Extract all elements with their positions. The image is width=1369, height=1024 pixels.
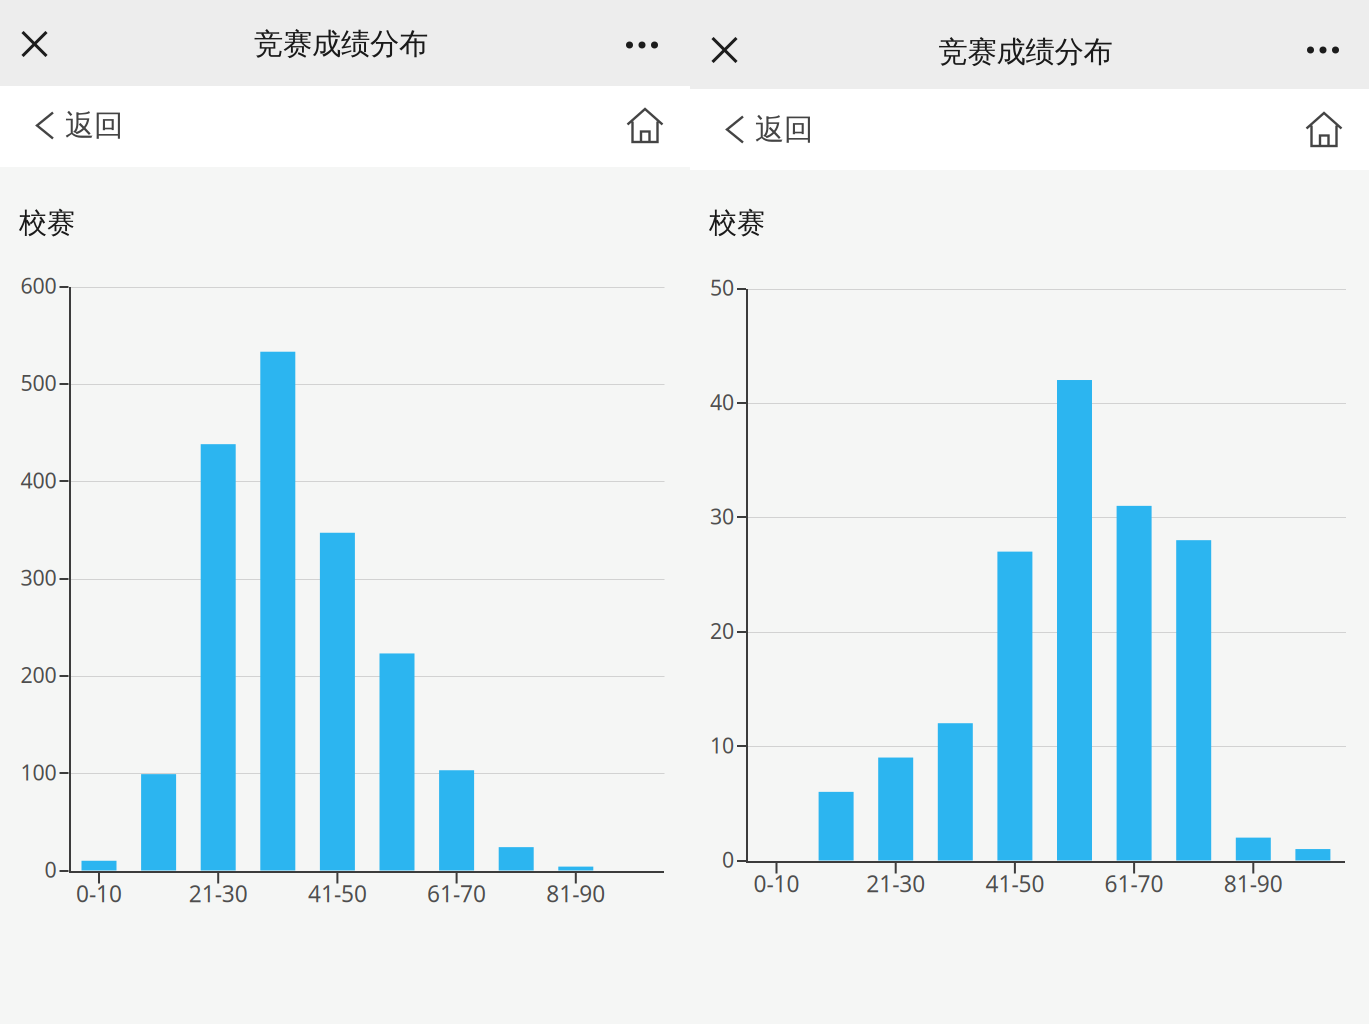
button[interactable]: More options	[1286, 18, 1360, 82]
staticText: 50	[710, 273, 734, 302]
staticText: 40	[710, 388, 734, 416]
staticText: 0	[722, 845, 734, 874]
staticText: 30	[710, 502, 734, 530]
staticText: 返回	[755, 111, 813, 147]
staticText: 41-50	[985, 868, 1044, 898]
staticText: 61-70	[427, 878, 486, 908]
staticText: 20	[710, 616, 734, 645]
staticText: 21-30	[189, 878, 248, 908]
button[interactable]: Close	[690, 18, 759, 82]
staticText: 21-30	[866, 868, 925, 898]
staticText: 10	[710, 731, 734, 759]
button[interactable]: 返回	[690, 97, 835, 161]
button[interactable]: More options	[605, 13, 679, 77]
staticText: 81-90	[1224, 868, 1283, 898]
staticText: 竞赛成绩分布	[254, 26, 428, 62]
staticText: 校赛	[19, 206, 75, 240]
staticText: 200	[20, 661, 56, 689]
staticText: 0-10	[753, 868, 799, 898]
staticText: 100	[20, 758, 56, 786]
staticText: 400	[20, 466, 56, 494]
staticText: 300	[20, 563, 56, 592]
staticText: 41-50	[308, 878, 367, 908]
staticText: 0	[44, 855, 56, 884]
staticText: 竞赛成绩分布	[938, 34, 1112, 70]
staticText: 0-10	[76, 878, 122, 908]
staticText: 600	[20, 271, 56, 300]
button[interactable]: Close	[0, 12, 69, 76]
staticText: 返回	[65, 107, 123, 143]
staticText: 81-90	[546, 878, 605, 908]
button[interactable]: Home	[602, 93, 688, 157]
staticText: 500	[20, 369, 56, 397]
button[interactable]: 返回	[0, 93, 145, 157]
staticText: 校赛	[709, 206, 765, 240]
button[interactable]: Home	[1281, 97, 1367, 161]
staticText: 61-70	[1105, 868, 1164, 898]
